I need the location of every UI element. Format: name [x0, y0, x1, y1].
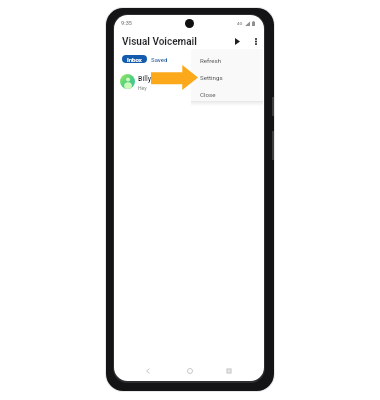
button[interactable]: Refresh — [191, 53, 263, 67]
button[interactable]: Close — [191, 87, 263, 101]
staticText: Saved — [151, 56, 168, 63]
staticText: Billy — [138, 75, 152, 83]
staticText: 4G — [237, 21, 243, 26]
staticText: 9:35 — [121, 20, 133, 27]
staticText: Visual Voicemail — [122, 36, 197, 48]
button[interactable]: More options — [248, 33, 264, 49]
button[interactable]: Billy — [114, 69, 264, 94]
staticText: Refresh — [200, 57, 222, 64]
button[interactable]: Settings — [191, 70, 263, 84]
button[interactable]: Back — [141, 364, 155, 378]
staticText: Hey — [138, 85, 147, 91]
button[interactable]: Inbox — [122, 55, 147, 63]
button[interactable]: Recents — [222, 364, 236, 378]
button[interactable]: Play — [229, 33, 245, 49]
staticText: Inbox — [127, 56, 142, 63]
staticText: Settings — [200, 74, 223, 81]
staticText: Close — [200, 91, 216, 98]
button[interactable]: Saved — [149, 55, 170, 63]
button[interactable]: Home — [183, 364, 197, 378]
